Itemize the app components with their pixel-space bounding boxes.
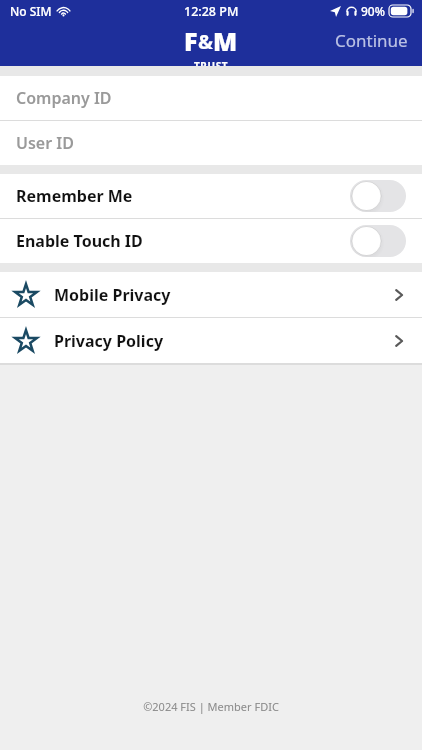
staticText: 12:28 PM: [184, 3, 239, 20]
button[interactable]: Toggle: [350, 225, 406, 257]
staticText: Company ID: [16, 87, 112, 109]
staticText: User ID: [16, 132, 74, 154]
staticText: Privacy Policy: [54, 330, 164, 352]
button[interactable]: Company ID: [0, 76, 422, 120]
staticText: Mobile Privacy: [54, 284, 171, 306]
staticText: F: [184, 24, 198, 58]
staticText: Enable Touch ID: [16, 230, 143, 252]
staticText: ©2024 FIS | Member FDIC: [143, 699, 279, 714]
staticText: M: [213, 24, 238, 58]
button[interactable]: Toggle: [350, 180, 406, 212]
staticText: No SIM: [10, 3, 52, 19]
staticText: &: [198, 28, 213, 55]
button[interactable]: Privacy Policy: [0, 318, 422, 363]
button[interactable]: Mobile Privacy: [0, 272, 422, 317]
staticText: TRUST: [194, 59, 229, 66]
button[interactable]: Remember Me: [0, 174, 422, 218]
button[interactable]: User ID: [0, 121, 422, 165]
button[interactable]: Enable Touch ID: [0, 219, 422, 263]
staticText: Remember Me: [16, 185, 133, 207]
staticText: Continue: [335, 29, 408, 52]
staticText: 90%: [361, 3, 385, 19]
button[interactable]: Continue: [321, 21, 422, 60]
